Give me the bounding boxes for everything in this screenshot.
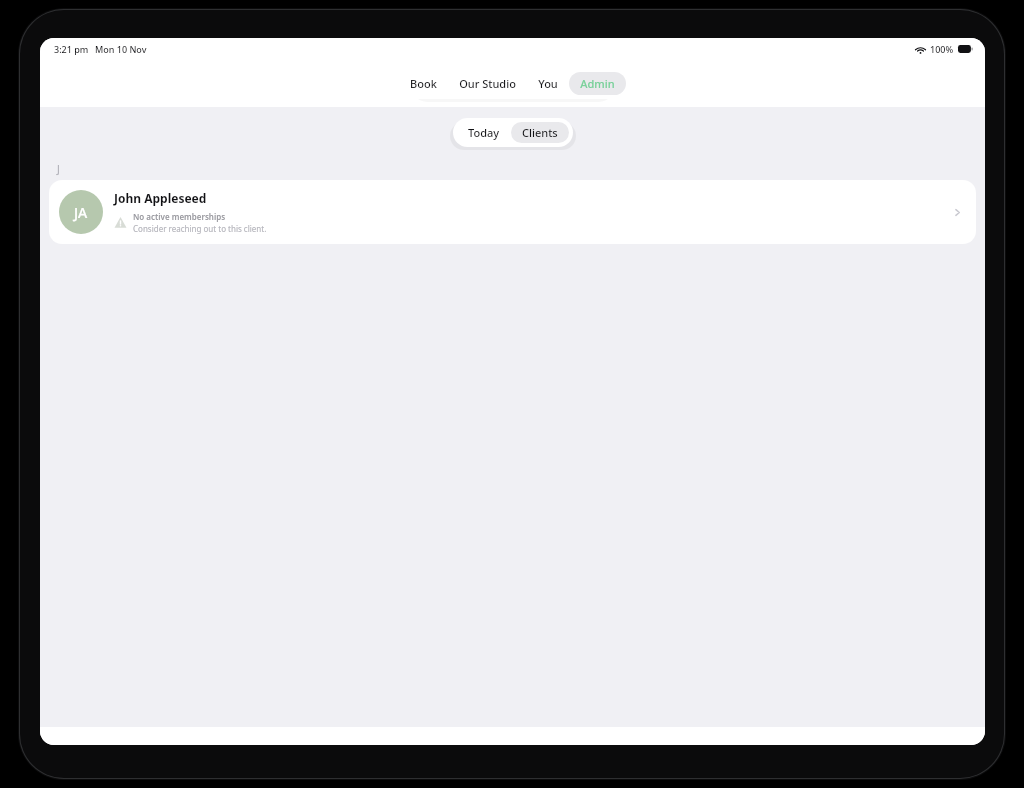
button[interactable]: Book [399,72,448,95]
button[interactable]: Today [457,122,511,143]
staticText: JA [74,203,88,222]
staticText: John Appleseed [114,190,207,206]
button[interactable]: You [527,72,569,95]
staticText: Mon 10 Nov [95,43,147,55]
button[interactable]: JA [49,180,976,244]
button[interactable]: Admin [569,72,626,95]
other: Open client details [948,203,966,221]
staticText: Book [410,76,437,91]
staticText: Admin [580,76,615,91]
staticText: 100% [930,43,954,55]
staticText: You [538,76,558,91]
staticText: Today [468,125,500,140]
staticText: 3:21 pm [54,43,89,55]
staticText: Our Studio [459,76,516,91]
staticText: Clients [522,125,558,140]
staticText: Consider reaching out to this client. [133,223,267,234]
staticText: J [57,162,60,176]
staticText: No active memberships [133,211,226,222]
button[interactable]: Clients [511,122,569,143]
button[interactable]: Our Studio [448,72,527,95]
